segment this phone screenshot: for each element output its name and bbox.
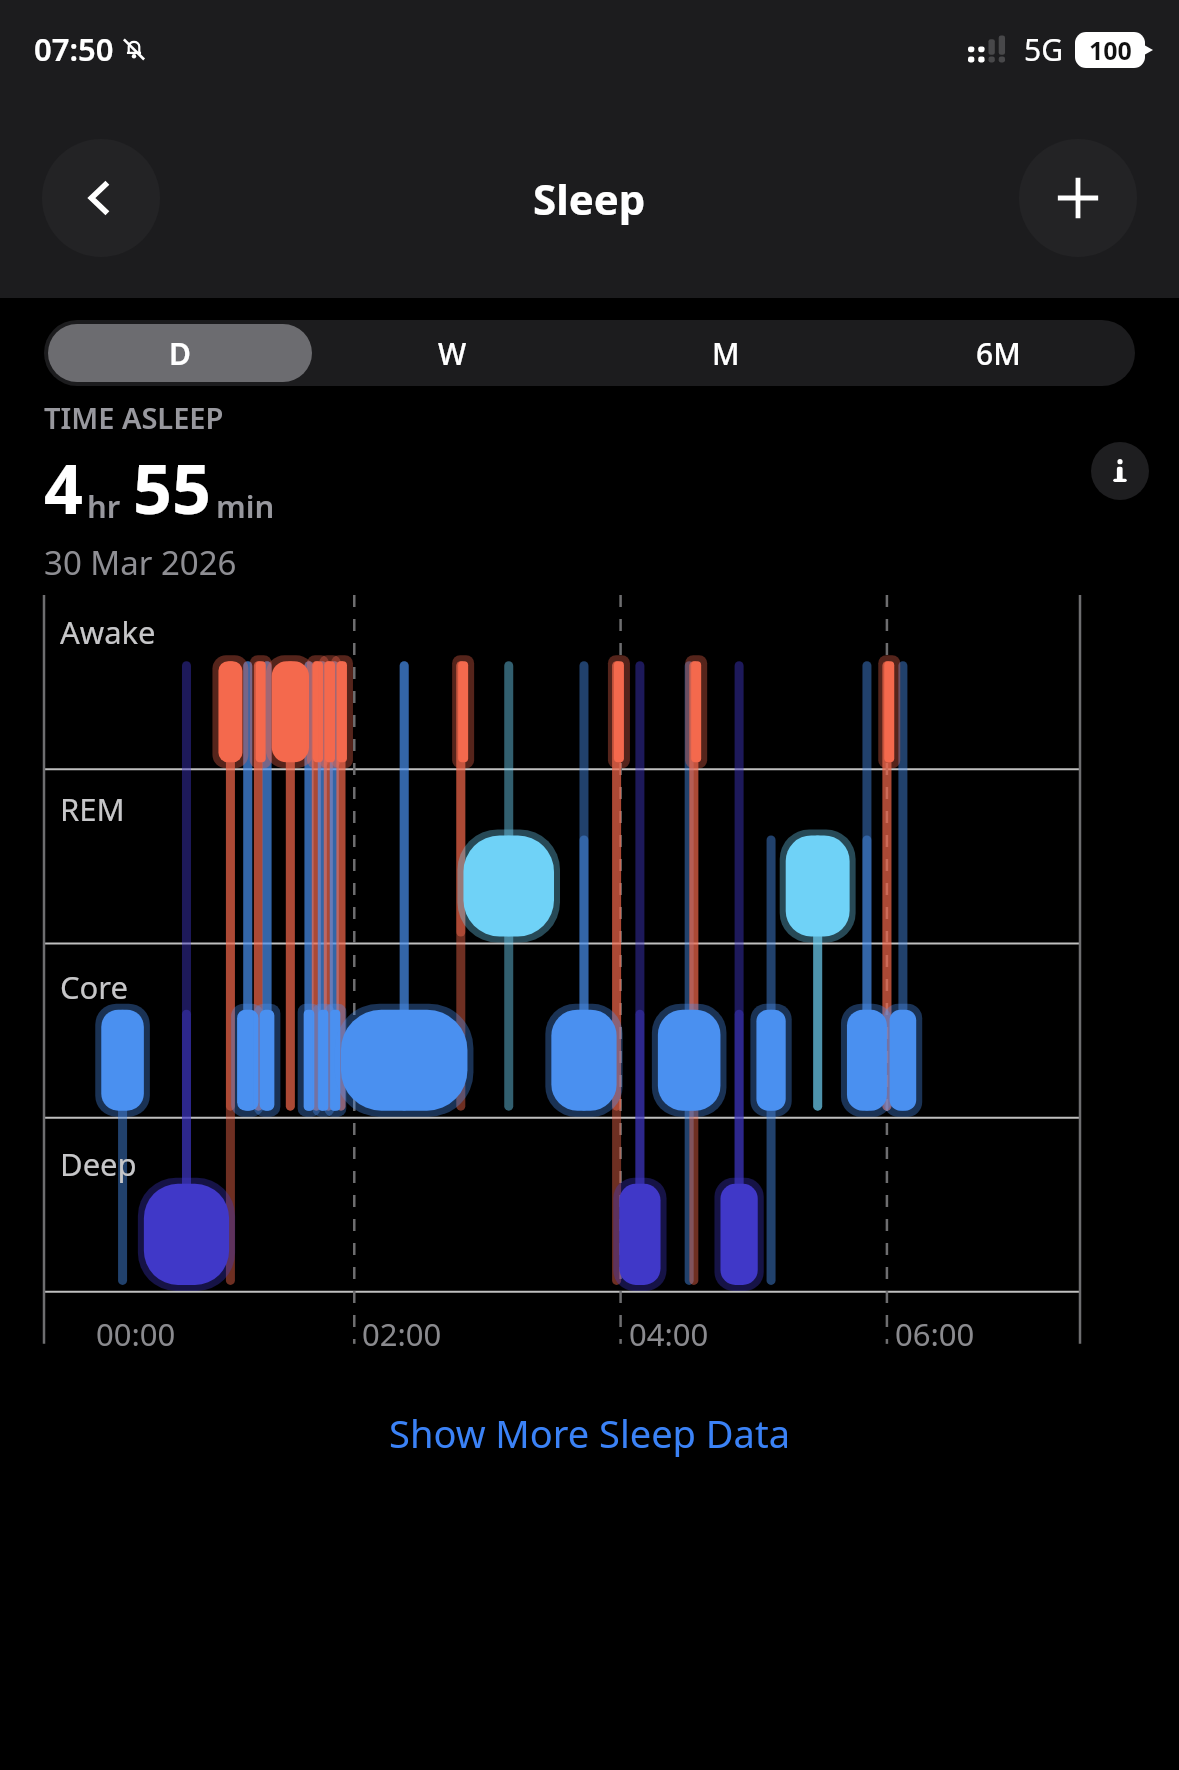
staticText: Awake — [60, 611, 156, 653]
staticText: M — [712, 333, 740, 374]
staticText: Core — [60, 966, 129, 1008]
button[interactable]: Information — [1091, 442, 1149, 500]
staticText: 04:00 — [629, 1313, 709, 1355]
staticText: W — [438, 333, 467, 374]
staticText: Sleep — [533, 170, 646, 227]
button[interactable]: Add — [1019, 139, 1137, 257]
staticText: hr — [87, 485, 121, 527]
button[interactable]: Back — [42, 139, 160, 257]
staticText: 4 — [44, 441, 83, 534]
staticText: Deep — [60, 1143, 137, 1185]
staticText: REM — [60, 788, 125, 830]
staticText: Show More Sleep Data — [389, 1407, 790, 1459]
staticText: 30 Mar 2026 — [44, 540, 237, 585]
staticText: 06:00 — [895, 1313, 975, 1355]
button[interactable]: W — [320, 324, 585, 382]
staticText: 00:00 — [96, 1313, 176, 1355]
staticText: 07:50 — [34, 28, 114, 70]
staticText: D — [169, 333, 191, 374]
staticText: 5G — [1024, 29, 1063, 70]
button[interactable]: 6M — [866, 324, 1131, 382]
button[interactable]: M — [593, 324, 858, 382]
staticText: 6M — [976, 333, 1021, 374]
staticText: TIME ASLEEP — [44, 398, 224, 437]
staticText: 100 — [1089, 33, 1132, 67]
button[interactable]: Show More Sleep Data — [0, 1393, 1179, 1473]
staticText: 55 — [133, 441, 211, 534]
button[interactable]: D — [48, 324, 312, 382]
staticText: 02:00 — [362, 1313, 442, 1355]
staticText: min — [216, 485, 275, 527]
